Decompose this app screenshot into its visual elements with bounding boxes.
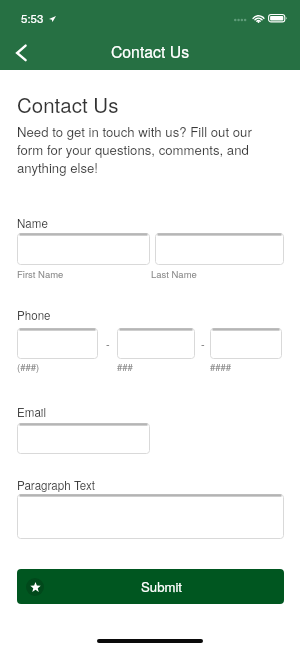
button[interactable] <box>117 328 195 359</box>
button[interactable] <box>17 233 150 265</box>
staticText: Email <box>17 404 46 421</box>
staticText: - <box>106 336 110 352</box>
staticText: (###) <box>17 360 40 374</box>
button[interactable] <box>17 328 98 359</box>
staticText: Submit <box>141 577 183 596</box>
staticText: - <box>201 336 205 352</box>
staticText: Name <box>17 215 48 232</box>
staticText: Phone <box>17 307 51 324</box>
staticText: Contact Us <box>0 40 300 63</box>
staticText: ### <box>117 360 133 374</box>
button[interactable]: Back <box>8 40 34 66</box>
staticText: First Name <box>17 267 64 281</box>
button[interactable] <box>17 423 150 454</box>
button[interactable] <box>210 328 282 359</box>
staticText: 5:53 <box>21 10 44 26</box>
staticText: Last Name <box>151 267 197 281</box>
staticText: #### <box>210 360 232 374</box>
button[interactable] <box>155 233 284 265</box>
staticText: Paragraph Text <box>17 477 96 494</box>
staticText: Need to get in touch with us? Fill out o… <box>17 122 269 177</box>
button[interactable] <box>17 494 284 539</box>
button[interactable]: Submit <box>17 569 284 604</box>
staticText: Contact Us <box>17 89 119 118</box>
